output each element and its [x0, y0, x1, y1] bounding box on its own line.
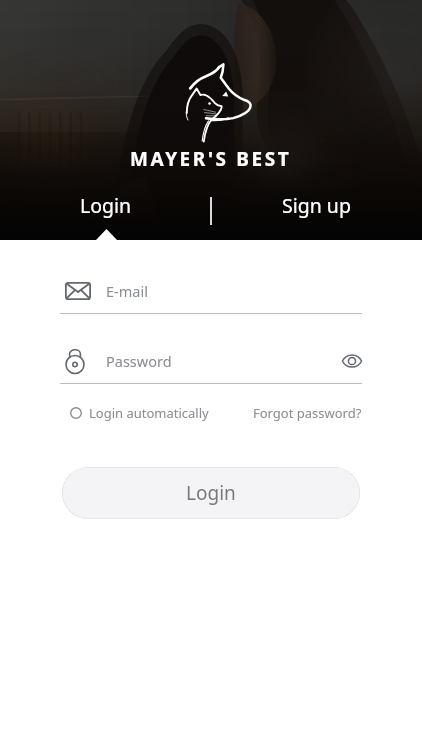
staticText: Login [80, 192, 132, 219]
button[interactable]: Show password [334, 347, 362, 375]
button[interactable]: E-mail [60, 275, 362, 307]
button[interactable]: Forgot password? [253, 404, 362, 422]
staticText: Sign up [282, 192, 351, 219]
staticText: MAYER'S BEST [130, 146, 292, 172]
staticText: Login [186, 480, 236, 506]
staticText: E-mail [106, 281, 148, 301]
staticText: Password [106, 351, 172, 371]
button[interactable]: Password [60, 345, 362, 377]
button[interactable]: Sign up [211, 176, 422, 234]
button[interactable]: Login automatically [60, 404, 235, 422]
button[interactable]: Login [62, 467, 360, 519]
staticText: Login automatically [89, 404, 209, 422]
button[interactable]: Login [0, 176, 211, 234]
staticText: Forgot password? [253, 404, 362, 422]
